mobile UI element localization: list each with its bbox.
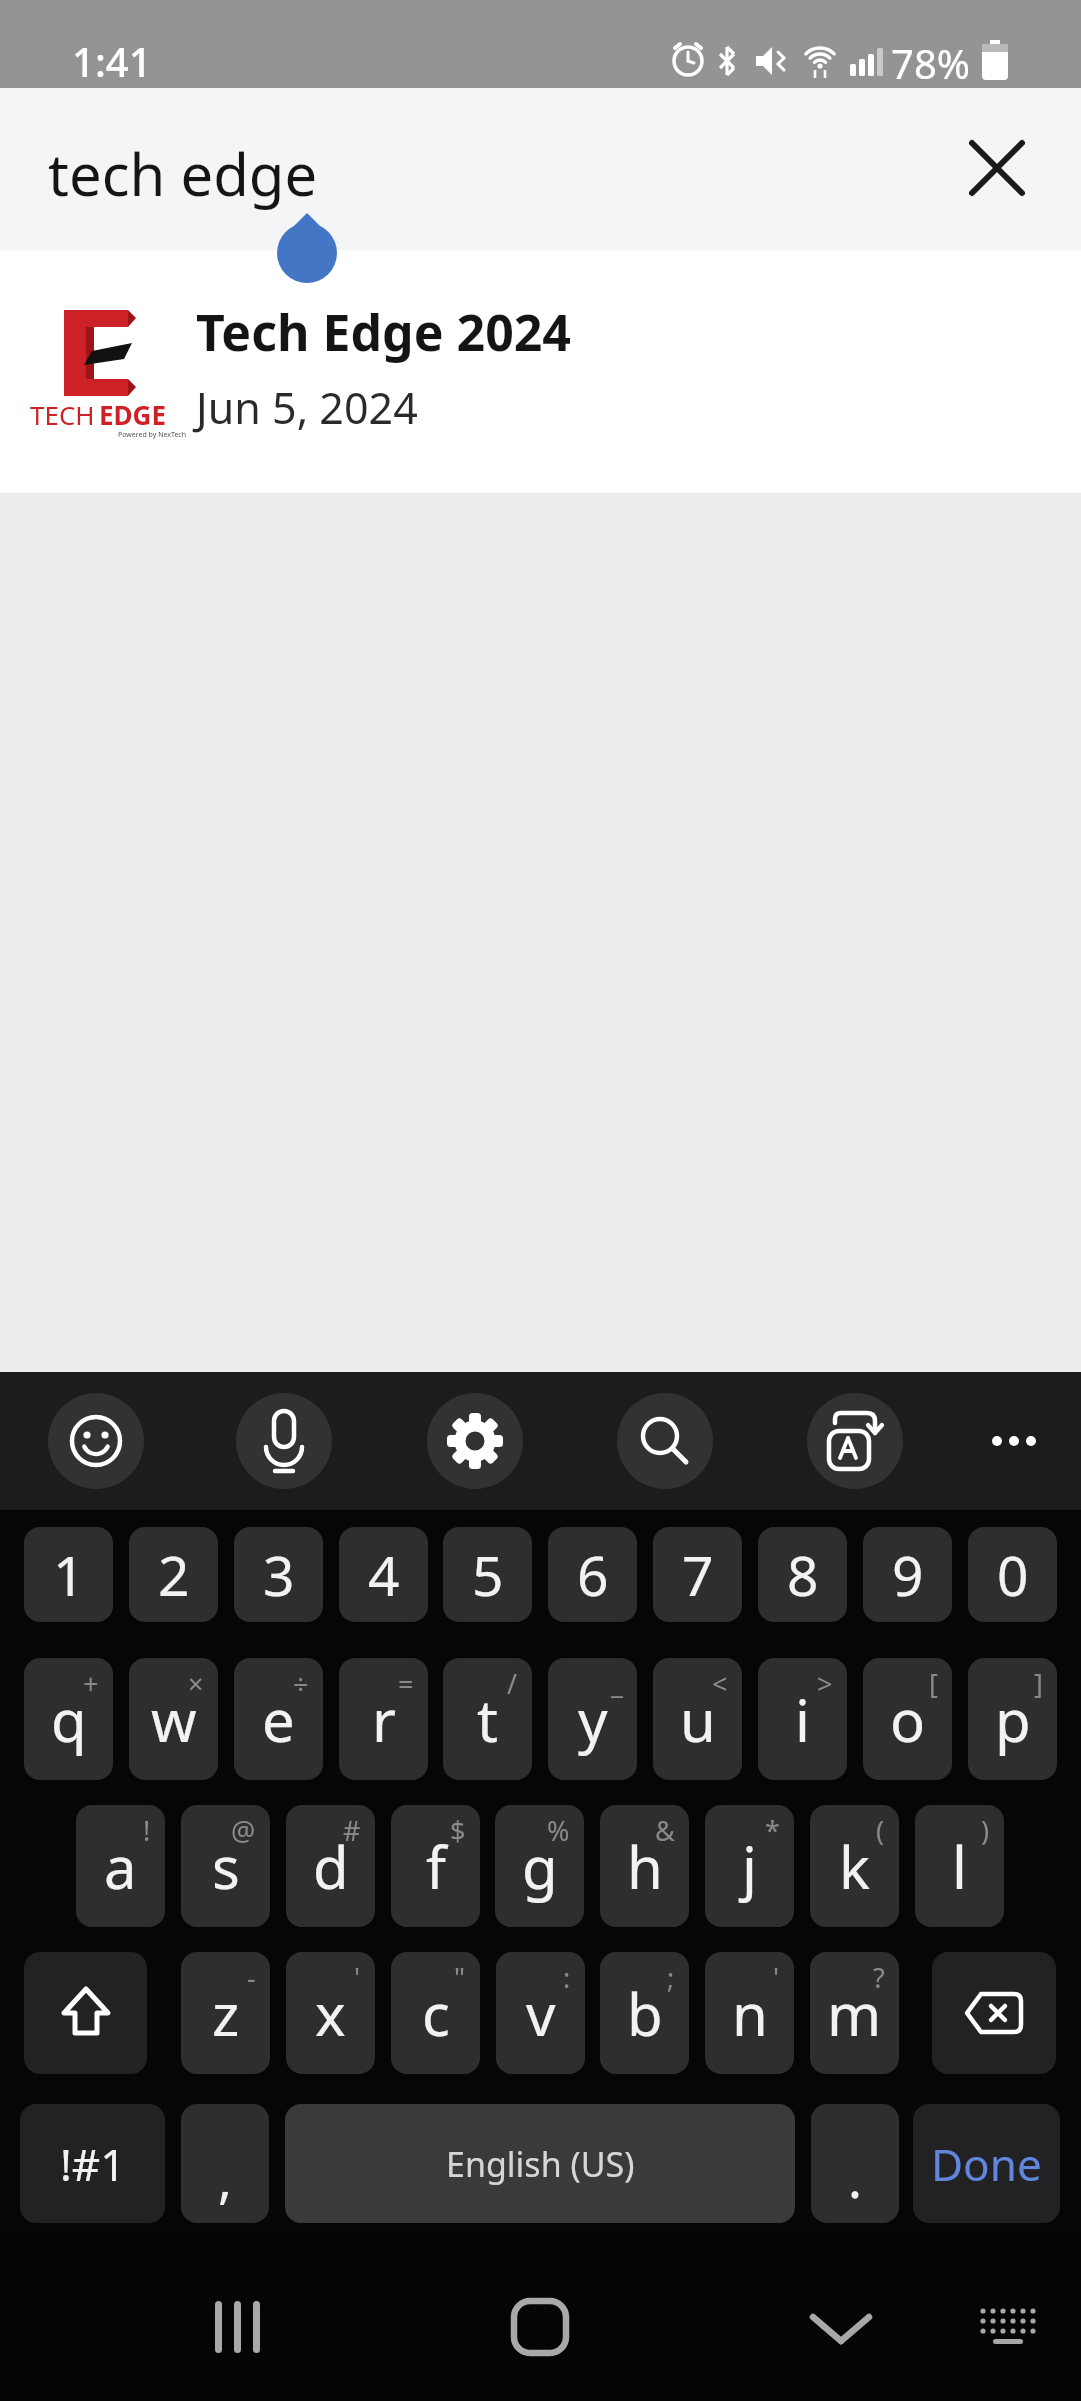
- button[interactable]: 8: [758, 1527, 847, 1622]
- button[interactable]: i: [758, 1658, 847, 1780]
- button[interactable]: 6: [548, 1527, 637, 1622]
- staticText: b: [627, 1974, 663, 2053]
- staticText: English (US): [446, 2141, 635, 2187]
- button[interactable]: [187, 2277, 287, 2377]
- staticText: &: [655, 1812, 675, 1849]
- button[interactable]: [236, 1393, 332, 1489]
- staticText: a: [104, 1827, 137, 1906]
- staticText: <: [712, 1665, 728, 1702]
- staticText: %: [547, 1812, 570, 1849]
- staticText: 7: [682, 1537, 714, 1612]
- staticText: TECH: [30, 397, 95, 432]
- staticText: EDGE: [99, 397, 166, 432]
- button[interactable]: b: [600, 1952, 689, 2074]
- button[interactable]: 0: [968, 1527, 1057, 1622]
- staticText: p: [995, 1680, 1031, 1759]
- staticText: _: [611, 1665, 623, 1702]
- button[interactable]: [963, 2287, 1053, 2367]
- button[interactable]: [932, 1952, 1056, 2074]
- button[interactable]: [617, 1393, 713, 1489]
- button[interactable]: [427, 1393, 523, 1489]
- staticText: ]: [1034, 1665, 1043, 1702]
- button[interactable]: 5: [443, 1527, 532, 1622]
- button[interactable]: Tech Edge 2024: [0, 250, 1081, 493]
- button[interactable]: s: [181, 1805, 270, 1927]
- staticText: Jun 5, 2024: [196, 378, 418, 437]
- button[interactable]: g: [495, 1805, 584, 1927]
- staticText: *: [765, 1812, 780, 1849]
- staticText: v: [526, 1974, 556, 2053]
- staticText: 3: [263, 1537, 295, 1612]
- button[interactable]: 2: [129, 1527, 218, 1622]
- button[interactable]: f: [391, 1805, 480, 1927]
- button[interactable]: x: [286, 1952, 375, 2074]
- staticText: o: [890, 1680, 926, 1759]
- staticText: ': [354, 1959, 361, 1996]
- staticText: x: [315, 1974, 346, 2053]
- button[interactable]: j: [705, 1805, 794, 1927]
- staticText: (: [876, 1812, 885, 1849]
- button[interactable]: English (US): [285, 2104, 795, 2223]
- button[interactable]: [24, 1952, 147, 2074]
- button[interactable]: n: [705, 1952, 794, 2074]
- staticText: 5: [472, 1537, 504, 1612]
- button[interactable]: 9: [863, 1527, 952, 1622]
- staticText: +: [83, 1665, 99, 1702]
- button[interactable]: .: [811, 2104, 899, 2223]
- button[interactable]: Done: [913, 2104, 1060, 2223]
- button[interactable]: e: [234, 1658, 323, 1780]
- staticText: ): [981, 1812, 990, 1849]
- button[interactable]: r: [339, 1658, 428, 1780]
- button[interactable]: [48, 1393, 144, 1489]
- button[interactable]: w: [129, 1658, 218, 1780]
- button[interactable]: t: [443, 1658, 532, 1780]
- button[interactable]: c: [391, 1952, 480, 2074]
- staticText: Done: [931, 2134, 1042, 2194]
- button[interactable]: !#1: [20, 2104, 165, 2223]
- staticText: ,: [218, 2142, 232, 2213]
- staticText: t: [477, 1680, 498, 1759]
- button[interactable]: 4: [339, 1527, 428, 1622]
- button[interactable]: m: [810, 1952, 899, 2074]
- button[interactable]: d: [286, 1805, 375, 1927]
- staticText: h: [627, 1827, 663, 1906]
- button[interactable]: k: [810, 1805, 899, 1927]
- staticText: $: [450, 1812, 466, 1849]
- staticText: w: [151, 1680, 197, 1759]
- button[interactable]: v: [496, 1952, 585, 2074]
- button[interactable]: h: [600, 1805, 689, 1927]
- button[interactable]: [807, 1393, 903, 1489]
- button[interactable]: z: [181, 1952, 270, 2074]
- button[interactable]: l: [915, 1805, 1004, 1927]
- staticText: z: [212, 1974, 240, 2053]
- staticText: tech edge: [48, 134, 318, 213]
- button[interactable]: p: [968, 1658, 1057, 1780]
- button[interactable]: ,: [181, 2104, 269, 2223]
- staticText: ×: [188, 1665, 204, 1702]
- staticText: s: [212, 1827, 240, 1906]
- button[interactable]: o: [863, 1658, 952, 1780]
- button[interactable]: [952, 123, 1042, 213]
- staticText: j: [742, 1827, 757, 1906]
- button[interactable]: y: [548, 1658, 637, 1780]
- staticText: #: [343, 1812, 361, 1849]
- staticText: 2: [158, 1537, 190, 1612]
- button[interactable]: 1: [24, 1527, 113, 1622]
- button[interactable]: 7: [653, 1527, 742, 1622]
- staticText: m: [827, 1974, 882, 2053]
- staticText: Tech Edge 2024: [196, 298, 571, 366]
- staticText: 0: [997, 1537, 1029, 1612]
- staticText: g: [522, 1827, 558, 1906]
- staticText: f: [426, 1827, 446, 1906]
- staticText: 9: [892, 1537, 924, 1612]
- button[interactable]: q: [24, 1658, 113, 1780]
- button[interactable]: u: [653, 1658, 742, 1780]
- button[interactable]: a: [76, 1805, 165, 1927]
- staticText: >: [817, 1665, 833, 1702]
- button[interactable]: [791, 2277, 891, 2377]
- staticText: :: [563, 1959, 571, 1996]
- staticText: =: [398, 1665, 414, 1702]
- staticText: d: [313, 1827, 349, 1906]
- button[interactable]: [490, 2277, 590, 2377]
- button[interactable]: 3: [234, 1527, 323, 1622]
